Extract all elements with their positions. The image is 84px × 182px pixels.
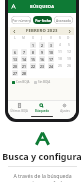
staticText: 2 <box>41 43 43 48</box>
button[interactable]: Ajustes <box>53 101 76 114</box>
button[interactable]: 10 <box>46 48 55 55</box>
staticText: 26 <box>67 63 71 68</box>
button[interactable]: Últimos BOJA <box>8 101 30 114</box>
button[interactable]: 6 <box>11 48 19 55</box>
staticText: Con BOJA <box>16 80 30 84</box>
staticText: Últimos BOJA <box>10 109 28 113</box>
staticText: Búsqueda <box>35 109 49 113</box>
staticText: Avanzada <box>56 18 71 22</box>
staticText: M <box>22 36 25 40</box>
staticText: 21 <box>22 64 26 69</box>
staticText: X <box>32 36 34 40</box>
staticText: 10 <box>49 50 53 55</box>
staticText: 12 <box>67 49 71 54</box>
staticText: FEBRERO 2023 <box>26 28 58 34</box>
button[interactable]: 25 <box>55 62 64 69</box>
staticText: 6 <box>14 50 16 55</box>
button[interactable]: 23 <box>37 62 46 69</box>
button[interactable]: 26 <box>64 62 73 69</box>
staticText: 18 <box>58 56 62 61</box>
staticText: 5 <box>68 42 70 47</box>
staticText: 7 <box>23 50 25 55</box>
staticText: 19 <box>67 56 71 61</box>
button[interactable]: 13 <box>11 55 19 62</box>
button[interactable]: 24 <box>46 62 55 69</box>
button[interactable]: 2 <box>37 41 46 48</box>
button[interactable]: Avanzada <box>54 16 73 24</box>
staticText: V <box>50 36 52 40</box>
button[interactable]: Por fecha <box>33 16 52 24</box>
button[interactable]: Inicio <box>11 4 16 9</box>
button[interactable]: Por número <box>11 16 31 24</box>
button[interactable]: 21 <box>19 62 28 69</box>
button[interactable]: Mes siguiente <box>67 29 72 34</box>
button[interactable]: 15 <box>28 55 37 62</box>
staticText: 23 <box>40 64 44 69</box>
button[interactable]: 8 <box>28 48 37 55</box>
staticText: 15 <box>31 57 35 62</box>
button[interactable]: 11 <box>55 48 64 55</box>
button[interactable]: 22 <box>28 62 37 69</box>
button[interactable]: 20 <box>11 62 19 69</box>
staticText: Sin BOJA <box>38 80 51 84</box>
staticText: 14 <box>22 57 26 62</box>
button[interactable]: 17 <box>46 55 55 62</box>
other: Logo Junta de Andalucía <box>35 132 50 145</box>
staticText: Por fecha <box>35 18 51 22</box>
staticText: Por número <box>12 18 31 22</box>
button[interactable]: 27 <box>11 69 19 76</box>
staticText: 9 <box>41 50 43 55</box>
staticText: 28 <box>22 71 26 76</box>
staticText: BÚSQUEDA <box>30 4 55 9</box>
staticText: 11 <box>58 49 62 54</box>
button[interactable]: 12 <box>64 48 73 55</box>
button[interactable]: Búsqueda <box>30 101 53 114</box>
staticText: 8 <box>32 50 34 55</box>
staticText: 16 <box>40 57 44 62</box>
staticText: 3 <box>50 43 52 48</box>
button[interactable]: 3 <box>46 41 55 48</box>
staticText: 20 <box>13 64 17 69</box>
button[interactable]: 18 <box>55 55 64 62</box>
button[interactable]: 16 <box>37 55 46 62</box>
button[interactable]: Mes anterior <box>12 29 17 34</box>
button[interactable]: 14 <box>19 55 28 62</box>
button[interactable]: 28 <box>19 69 28 76</box>
staticText: L <box>14 36 16 40</box>
staticText: 27 <box>13 71 17 76</box>
button[interactable]: 7 <box>19 48 28 55</box>
staticText: 1 <box>32 43 34 48</box>
staticText: 13 <box>13 57 17 62</box>
staticText: 22 <box>31 64 35 69</box>
staticText: 25 <box>58 63 62 68</box>
button[interactable]: 5 <box>64 41 73 48</box>
button[interactable]: 9 <box>37 48 46 55</box>
staticText: A través de la búsqueda por número o fec… <box>9 172 76 182</box>
button[interactable]: 1 <box>28 41 37 48</box>
staticText: Busca y configura <box>2 150 82 162</box>
button[interactable]: 19 <box>64 55 73 62</box>
staticText: Ajustes <box>60 109 70 113</box>
staticText: 4 <box>59 42 61 47</box>
staticText: 24 <box>49 64 53 69</box>
staticText: S <box>59 36 61 40</box>
staticText: 17 <box>49 57 53 62</box>
staticText: D <box>67 36 70 40</box>
button[interactable]: 4 <box>55 41 64 48</box>
